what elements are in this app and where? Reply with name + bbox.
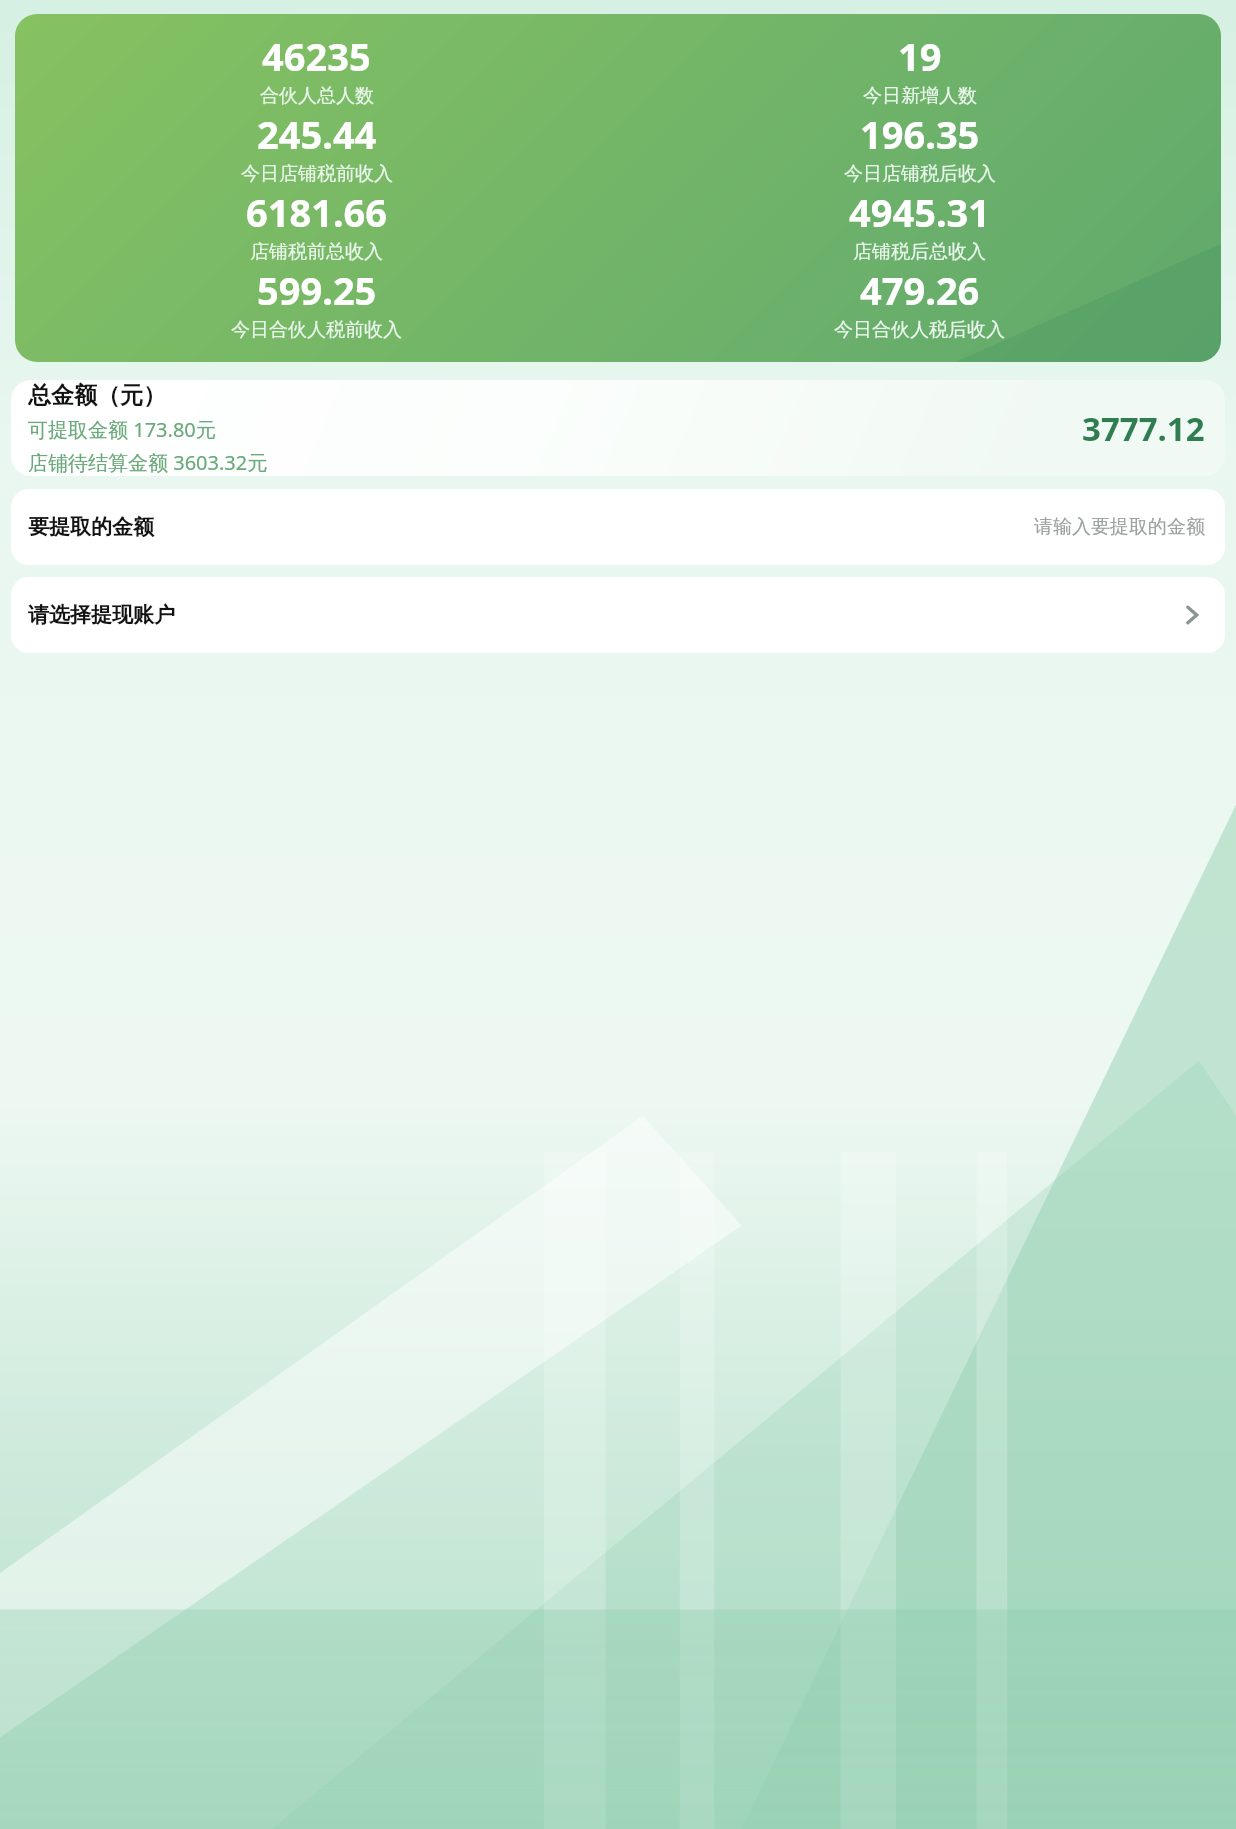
staticText: 196.35 bbox=[860, 108, 980, 160]
button[interactable]: 599.25 bbox=[15, 264, 618, 342]
staticText: 245.44 bbox=[257, 108, 377, 160]
button[interactable]: 8501.04 bbox=[15, 342, 618, 352]
staticText: 合伙人总人数 bbox=[260, 84, 374, 108]
staticText: 6181.66 bbox=[246, 186, 388, 238]
button[interactable]: 46235 bbox=[15, 30, 618, 108]
other: 选择 bbox=[1179, 602, 1205, 628]
button[interactable]: 6801.81 bbox=[618, 342, 1221, 352]
staticText: 店铺税后总收入 bbox=[853, 240, 986, 264]
staticText: 总金额（元） bbox=[28, 381, 166, 410]
staticText: 请输入要提取的金额 bbox=[1034, 515, 1205, 539]
button[interactable]: 196.35 bbox=[618, 108, 1221, 186]
staticText: 要提取的金额 bbox=[28, 514, 154, 540]
staticText: 今日店铺税前收入 bbox=[241, 162, 393, 186]
button[interactable]: 6181.66 bbox=[15, 186, 618, 264]
button[interactable]: 245.44 bbox=[15, 108, 618, 186]
staticText: 3777.12 bbox=[1082, 406, 1205, 451]
staticText: 46235 bbox=[262, 30, 371, 82]
button[interactable]: 总金额（元） bbox=[11, 380, 1225, 476]
staticText: 店铺待结算金额 3603.32元 bbox=[28, 449, 268, 476]
button[interactable]: 4945.31 bbox=[618, 186, 1221, 264]
staticText: 今日合伙人税后收入 bbox=[834, 318, 1005, 342]
staticText: 店铺税前总收入 bbox=[250, 240, 383, 264]
staticText: 请选择提现账户 bbox=[28, 602, 175, 628]
staticText: 19 bbox=[898, 30, 942, 82]
button[interactable]: 请选择提现账户 bbox=[11, 577, 1225, 653]
staticText: 599.25 bbox=[257, 264, 377, 316]
button[interactable]: 19 bbox=[618, 30, 1221, 108]
staticText: 479.26 bbox=[860, 264, 980, 316]
button[interactable]: 479.26 bbox=[618, 264, 1221, 342]
button[interactable]: 46235 bbox=[15, 14, 1221, 362]
staticText: 4945.31 bbox=[849, 186, 991, 238]
staticText: 今日合伙人税前收入 bbox=[231, 318, 402, 342]
staticText: 今日新增人数 bbox=[863, 84, 977, 108]
button[interactable]: 要提取的金额 bbox=[11, 489, 1225, 565]
staticText: 可提取金额 173.80元 bbox=[28, 416, 216, 443]
staticText: 今日店铺税后收入 bbox=[844, 162, 996, 186]
